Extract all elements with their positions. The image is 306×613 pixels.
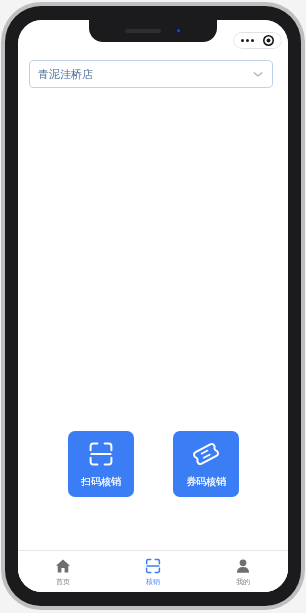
- staticText: 核销: [146, 577, 160, 586]
- button[interactable]: 核销: [108, 551, 198, 592]
- button[interactable]: 扫码核销: [68, 431, 134, 497]
- button[interactable]: 首页: [18, 551, 108, 592]
- staticText: 青泥洼桥店: [38, 67, 93, 81]
- staticText: 首页: [56, 577, 70, 586]
- staticText: 我的: [236, 577, 250, 586]
- button[interactable]: 我的: [198, 551, 288, 592]
- button[interactable]: 青泥洼桥店: [29, 60, 273, 88]
- staticText: 扫码核销: [81, 475, 121, 488]
- button[interactable]: Menu and close: [233, 32, 282, 49]
- button[interactable]: 券码核销: [173, 431, 239, 497]
- staticText: 券码核销: [186, 475, 226, 488]
